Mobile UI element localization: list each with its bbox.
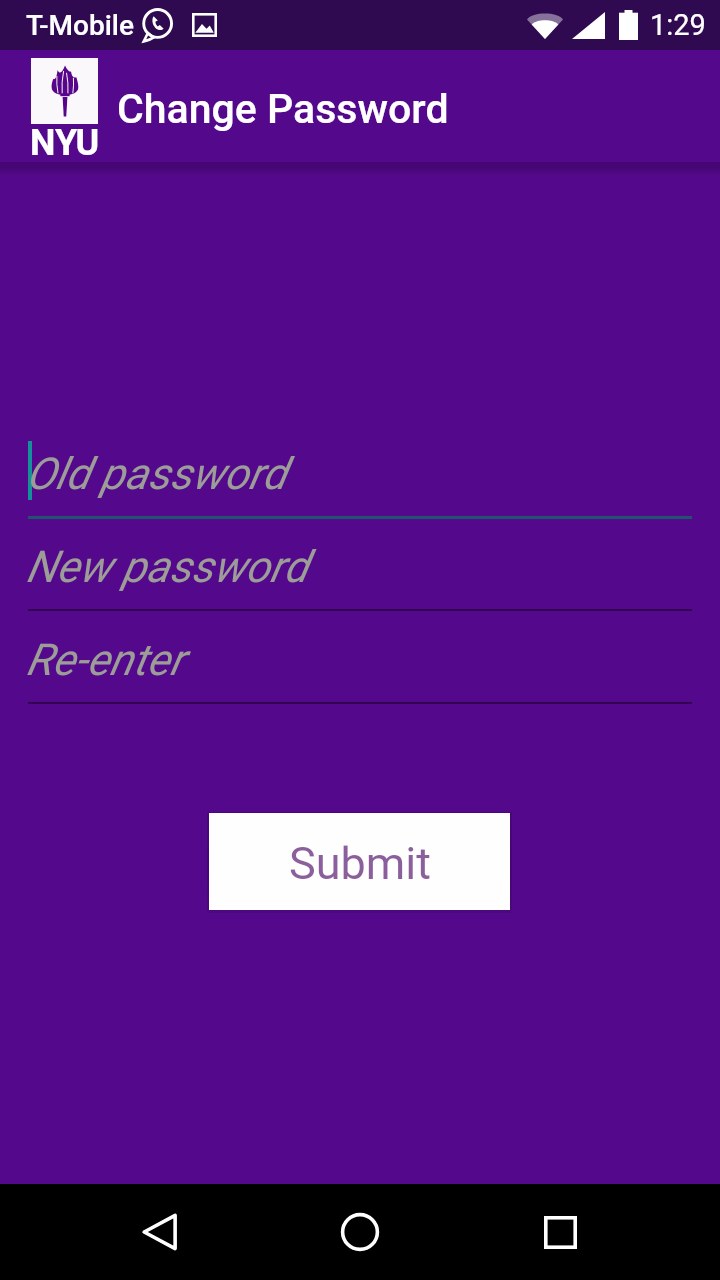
button[interactable]: Old password [0, 441, 720, 519]
staticText: New password [26, 541, 308, 593]
button[interactable]: New password [0, 534, 720, 612]
staticText: Re-enter [26, 634, 184, 686]
button[interactable]: Re-enter [0, 627, 720, 705]
button[interactable]: Submit [209, 813, 510, 910]
staticText: Change Password [117, 85, 449, 133]
staticText: NYU [30, 122, 100, 162]
staticText: Submit [289, 837, 431, 890]
button[interactable]: Recent apps [512, 1184, 608, 1280]
button[interactable]: Back [112, 1184, 208, 1280]
button[interactable]: Home [312, 1184, 408, 1280]
staticText: 1:29 [650, 8, 706, 42]
staticText: Old password [26, 448, 287, 500]
staticText: T-Mobile [26, 9, 135, 42]
